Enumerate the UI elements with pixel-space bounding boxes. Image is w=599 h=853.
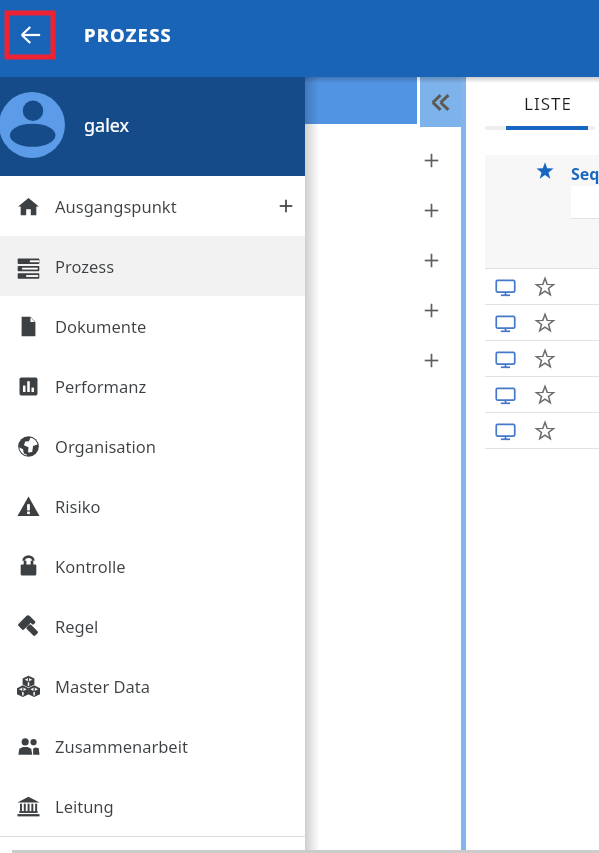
button[interactable]: Add bbox=[424, 203, 439, 218]
button[interactable]: Regel bbox=[0, 596, 305, 656]
staticText: Regel bbox=[55, 615, 99, 637]
button[interactable]: Add bbox=[424, 303, 439, 318]
button[interactable]: LISTE bbox=[488, 81, 599, 126]
button[interactable]: Leitung bbox=[0, 776, 305, 836]
button[interactable]: Add bbox=[424, 153, 439, 168]
button[interactable]: Add bbox=[424, 253, 439, 268]
button[interactable] bbox=[485, 377, 599, 413]
button[interactable]: Collapse panel bbox=[420, 77, 462, 127]
staticText: Dokumente bbox=[55, 315, 147, 337]
button[interactable]: Add bbox=[424, 353, 439, 368]
staticText: Leitung bbox=[55, 795, 114, 817]
staticText: Zusammenarbeit bbox=[55, 735, 188, 757]
button[interactable]: Master Data bbox=[0, 656, 305, 716]
staticText: Ausgangspunkt bbox=[55, 195, 177, 217]
button[interactable]: Prozess bbox=[0, 236, 305, 296]
button[interactable] bbox=[485, 341, 599, 377]
button[interactable]: Risiko bbox=[0, 476, 305, 536]
button[interactable]: Organisation bbox=[0, 416, 305, 476]
staticText: Performanz bbox=[55, 375, 147, 397]
staticText: Master Data bbox=[55, 675, 151, 697]
button[interactable] bbox=[485, 413, 599, 449]
staticText: Seq bbox=[571, 163, 599, 185]
button[interactable]: Add bbox=[264, 184, 308, 228]
staticText: Organisation bbox=[55, 435, 156, 457]
button[interactable]: Back bbox=[7, 13, 53, 57]
button[interactable]: Favourite bbox=[536, 162, 554, 180]
button[interactable]: Dokumente bbox=[0, 296, 305, 356]
staticText: galex bbox=[84, 113, 130, 138]
button[interactable]: Ausgangspunkt bbox=[0, 176, 305, 236]
staticText: PROZESS bbox=[84, 22, 172, 47]
button[interactable] bbox=[485, 269, 599, 305]
staticText: Prozess bbox=[55, 255, 115, 277]
button[interactable]: Kontrolle bbox=[0, 536, 305, 596]
button[interactable] bbox=[485, 305, 599, 341]
staticText: Risiko bbox=[55, 495, 101, 517]
staticText: LISTE bbox=[524, 92, 572, 115]
button[interactable]: Performanz bbox=[0, 356, 305, 416]
button[interactable]: Zusammenarbeit bbox=[0, 716, 305, 776]
staticText: Kontrolle bbox=[55, 555, 126, 577]
